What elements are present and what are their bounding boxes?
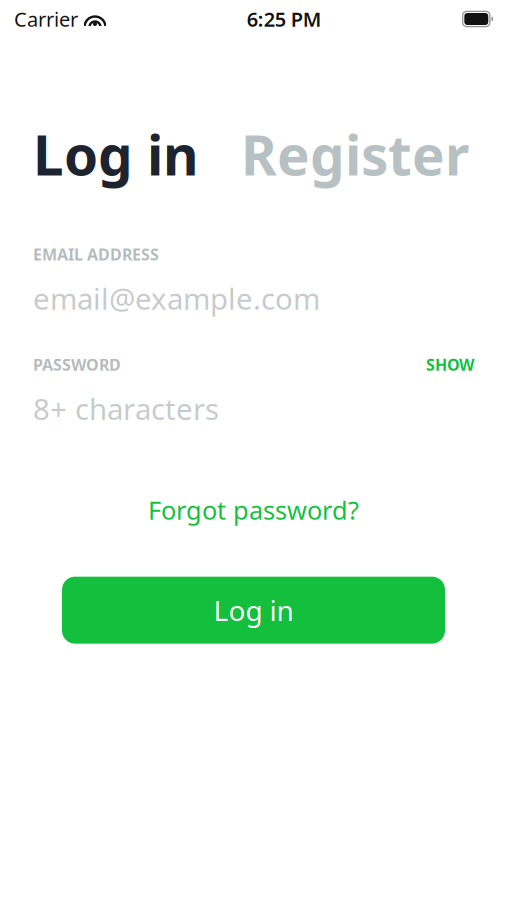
staticText: 8+ characters (33, 389, 219, 428)
button[interactable]: Forgot password? (0, 487, 507, 533)
button[interactable]: Register (241, 118, 469, 191)
staticText: 6:25 PM (247, 6, 322, 32)
staticText: Register (241, 118, 469, 191)
staticText: PASSWORD (33, 354, 121, 375)
staticText: Log in (213, 592, 293, 629)
button[interactable]: SHOW (426, 354, 474, 375)
staticText: Forgot password? (148, 493, 359, 527)
button[interactable]: Log in (62, 577, 445, 644)
staticText: email@example.com (33, 279, 320, 318)
staticText: SHOW (426, 354, 474, 375)
staticText: Carrier (14, 6, 78, 32)
staticText: EMAIL ADDRESS (33, 244, 159, 265)
staticText: Log in (33, 118, 199, 191)
button[interactable]: Log in (33, 118, 199, 191)
